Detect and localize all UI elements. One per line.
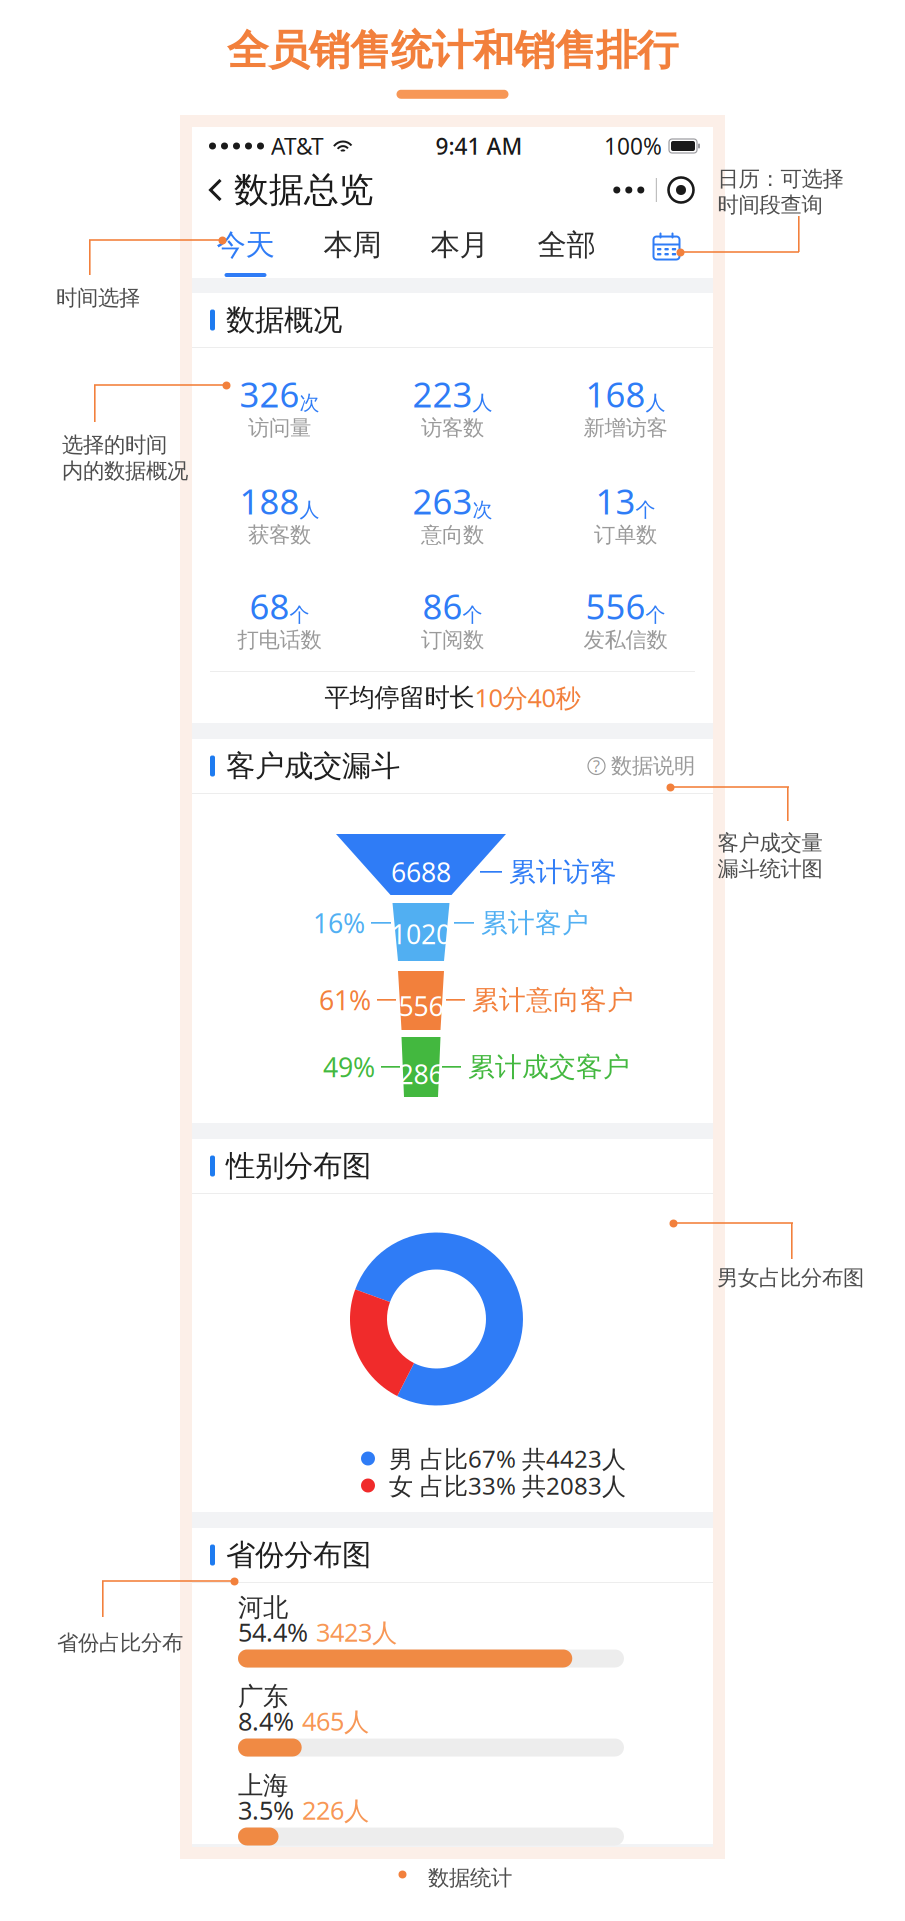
staticText: 100%	[604, 131, 662, 161]
staticText: 省份占比分布	[57, 1630, 183, 1656]
staticText: 次	[299, 390, 319, 415]
staticText: 6688	[391, 854, 451, 890]
staticText: 时间选择	[56, 285, 140, 311]
staticText: 个	[462, 602, 482, 627]
staticText: 49%	[323, 1049, 375, 1085]
staticText: 日历：可选择	[717, 166, 843, 192]
staticText: 女 占比33% 共2083人	[389, 1470, 626, 1501]
staticText: 61%	[319, 982, 371, 1018]
staticText: 漏斗统计图	[717, 856, 822, 882]
staticText: 数据说明	[611, 753, 695, 779]
staticText: 内的数据概况	[62, 458, 188, 484]
staticText: 访问量	[248, 415, 311, 441]
staticText: 个	[645, 602, 665, 627]
staticText: 获客数	[248, 522, 311, 548]
staticText: 全员销售统计和销售排行	[227, 25, 678, 76]
staticText: 556	[585, 583, 645, 629]
staticText: 9:41 AM	[435, 131, 522, 161]
staticText: 访客数	[421, 415, 484, 441]
staticText: 13	[595, 478, 635, 524]
staticText: 累计访客	[509, 856, 617, 888]
staticText: 客户成交量	[717, 830, 822, 856]
staticText: 河北	[238, 1592, 288, 1623]
staticText: 168	[585, 371, 645, 417]
staticText: 226人	[302, 1793, 369, 1827]
button[interactable]: 返回	[209, 163, 374, 217]
staticText: 累计意向客户	[472, 984, 634, 1016]
staticText: 465人	[302, 1704, 369, 1738]
staticText: 新增访客	[583, 415, 667, 441]
button[interactable]: ?	[588, 753, 695, 779]
staticText: 订单数	[594, 522, 657, 548]
staticText: 次	[472, 497, 492, 522]
button[interactable]: 全部	[513, 215, 620, 278]
staticText: 188	[239, 478, 299, 524]
staticText: 发私信数	[583, 627, 667, 653]
staticText: 86	[422, 583, 462, 629]
staticText: 54.4%	[238, 1615, 308, 1649]
staticText: 广东	[238, 1681, 288, 1712]
button[interactable]: 本月	[406, 215, 513, 278]
button[interactable]: 扫一扫	[657, 170, 705, 210]
staticText: 个	[635, 497, 655, 522]
button[interactable]: 更多	[602, 170, 656, 210]
staticText: 省份分布图	[226, 1537, 371, 1573]
staticText: 3423人	[316, 1615, 397, 1649]
staticText: 选择的时间	[62, 432, 167, 458]
staticText: 人	[645, 390, 665, 415]
staticText: ?	[593, 755, 600, 777]
staticText: 本周	[323, 227, 381, 263]
staticText: 累计成交客户	[468, 1051, 630, 1083]
staticText: 326	[239, 371, 299, 417]
button[interactable]: 今天	[192, 215, 299, 278]
staticText: 订阅数	[421, 627, 484, 653]
staticText: 男 占比67% 共4423人	[389, 1443, 626, 1474]
staticText: 时间段查询	[717, 192, 822, 218]
staticText: 全部	[537, 227, 595, 263]
staticText: 男女占比分布图	[717, 1265, 864, 1291]
staticText: 数据总览	[234, 169, 374, 211]
staticText: 数据概况	[226, 302, 342, 338]
staticText: 556	[398, 988, 443, 1024]
staticText: 数据统计	[428, 1865, 512, 1891]
button[interactable]: 日历	[620, 215, 713, 278]
staticText: 16%	[313, 905, 365, 941]
staticText: 1020	[391, 916, 451, 952]
staticText: 上海	[238, 1770, 288, 1801]
staticText: 打电话数	[237, 627, 321, 653]
staticText: 客户成交漏斗	[226, 748, 400, 784]
staticText: 263	[412, 478, 472, 524]
staticText: 本月	[430, 227, 488, 263]
staticText: 8.4%	[238, 1704, 294, 1738]
staticText: 286	[398, 1056, 443, 1092]
staticText: 10分40秒	[474, 681, 580, 714]
staticText: 个	[289, 602, 309, 627]
staticText: 3.5%	[238, 1793, 294, 1827]
staticText: 平均停留时长	[324, 682, 474, 713]
staticText: 人	[472, 390, 492, 415]
staticText: 223	[412, 371, 472, 417]
staticText: 累计客户	[481, 907, 589, 939]
staticText: 性别分布图	[226, 1148, 371, 1184]
button[interactable]: 本周	[299, 215, 406, 278]
staticText: 今天	[216, 227, 274, 263]
staticText: 68	[249, 583, 289, 629]
staticText: 人	[299, 497, 319, 522]
staticText: AT&T	[271, 131, 324, 161]
staticText: 意向数	[421, 522, 484, 548]
